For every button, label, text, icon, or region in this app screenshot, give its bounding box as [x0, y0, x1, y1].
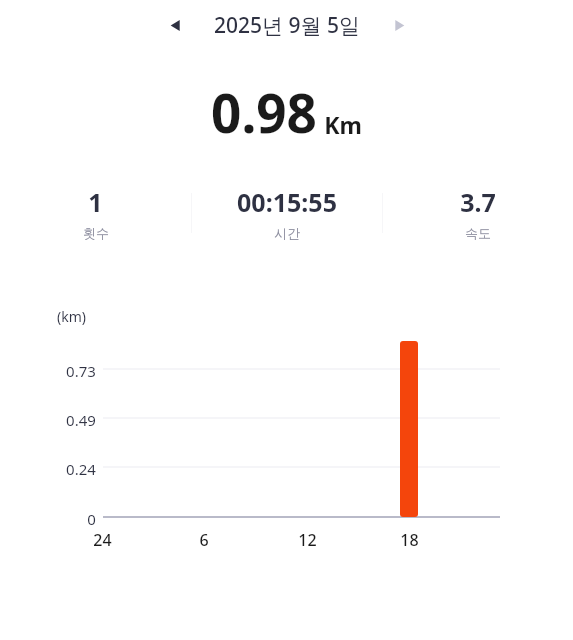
- button[interactable]: Previous day: [154, 4, 196, 46]
- staticText: (km): [57, 307, 86, 326]
- button[interactable]: 00:15:55: [192, 185, 382, 241]
- staticText: 3.7: [460, 185, 496, 219]
- staticText: 0.49: [66, 410, 96, 430]
- staticText: 2025년 9월 5일: [214, 11, 360, 40]
- staticText: 0: [87, 509, 96, 529]
- staticText: 18: [400, 529, 419, 551]
- button[interactable]: 3.7: [383, 185, 573, 241]
- staticText: 0.98: [211, 76, 317, 148]
- staticText: Km: [324, 109, 362, 140]
- staticText: 24: [93, 529, 112, 551]
- button[interactable]: 1: [0, 185, 191, 241]
- staticText: 1: [88, 185, 103, 219]
- staticText: 속도: [465, 225, 491, 241]
- button[interactable]: Next day: [378, 4, 420, 46]
- staticText: 00:15:55: [237, 185, 337, 219]
- staticText: 0.73: [66, 361, 96, 381]
- staticText: 횟수: [83, 225, 109, 241]
- staticText: 12: [298, 529, 317, 551]
- staticText: 시간: [274, 225, 300, 241]
- staticText: 6: [199, 529, 209, 551]
- staticText: 0.24: [66, 459, 96, 479]
